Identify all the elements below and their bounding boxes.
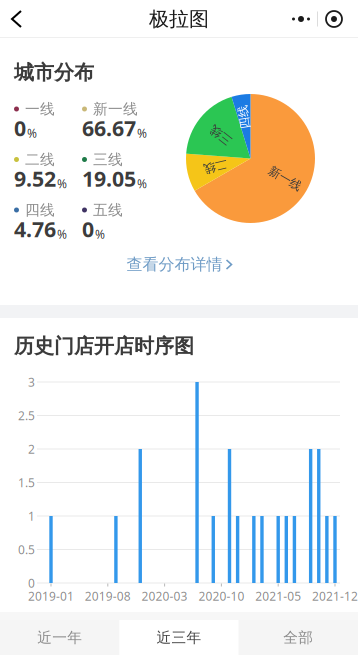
button[interactable]: More <box>285 6 358 32</box>
staticText: 2020-10 <box>198 588 244 604</box>
staticText: 二线 <box>25 150 55 168</box>
staticText: 极拉图 <box>149 7 209 31</box>
staticText: 城市分布 <box>14 60 94 85</box>
staticText: 3 <box>28 374 35 390</box>
staticText: 2 <box>28 441 35 457</box>
staticText: 2020-03 <box>142 588 188 604</box>
staticText: 四线 <box>232 110 256 124</box>
staticText: 2.5 <box>18 407 35 423</box>
staticText: 4.76 <box>14 215 56 243</box>
staticText: 0 <box>14 114 26 142</box>
staticText: 全部 <box>283 628 313 646</box>
staticText: 二线 <box>203 159 227 174</box>
staticText: % <box>57 176 67 192</box>
staticText: 19.05 <box>82 164 136 193</box>
staticText: 9.52 <box>14 164 56 193</box>
button[interactable]: Back <box>0 1 33 37</box>
staticText: 四线 <box>25 201 55 219</box>
button[interactable]: 查看分布详情 <box>0 242 358 286</box>
staticText: 新一线 <box>267 171 303 186</box>
button[interactable]: 全部 <box>239 620 358 655</box>
staticText: 近三年 <box>156 628 201 646</box>
staticText: 查看分布详情 <box>126 255 222 274</box>
staticText: 近一年 <box>37 628 82 646</box>
staticText: 0.5 <box>18 541 35 557</box>
staticText: 0 <box>28 575 35 591</box>
staticText: 三线 <box>93 150 123 168</box>
staticText: 历史门店开店时序图 <box>14 334 194 358</box>
staticText: % <box>95 226 105 242</box>
staticText: % <box>137 125 147 141</box>
staticText: 2021-05 <box>255 588 301 604</box>
staticText: 三线 <box>209 128 233 142</box>
staticText: 1.5 <box>18 474 35 490</box>
staticText: 2019-01 <box>28 588 74 604</box>
staticText: % <box>137 176 147 192</box>
staticText: 五线 <box>93 201 123 219</box>
button[interactable]: 近一年 <box>0 620 119 655</box>
staticText: % <box>57 226 67 242</box>
staticText: 2019-08 <box>85 588 131 604</box>
staticText: 新一线 <box>93 100 138 118</box>
button[interactable]: 近三年 <box>119 620 239 655</box>
staticText: 一线 <box>25 100 55 118</box>
staticText: 0 <box>82 215 94 243</box>
staticText: 66.67 <box>82 114 136 142</box>
staticText: % <box>27 125 37 141</box>
staticText: 2021-12 <box>312 588 358 604</box>
staticText: 1 <box>28 508 35 524</box>
